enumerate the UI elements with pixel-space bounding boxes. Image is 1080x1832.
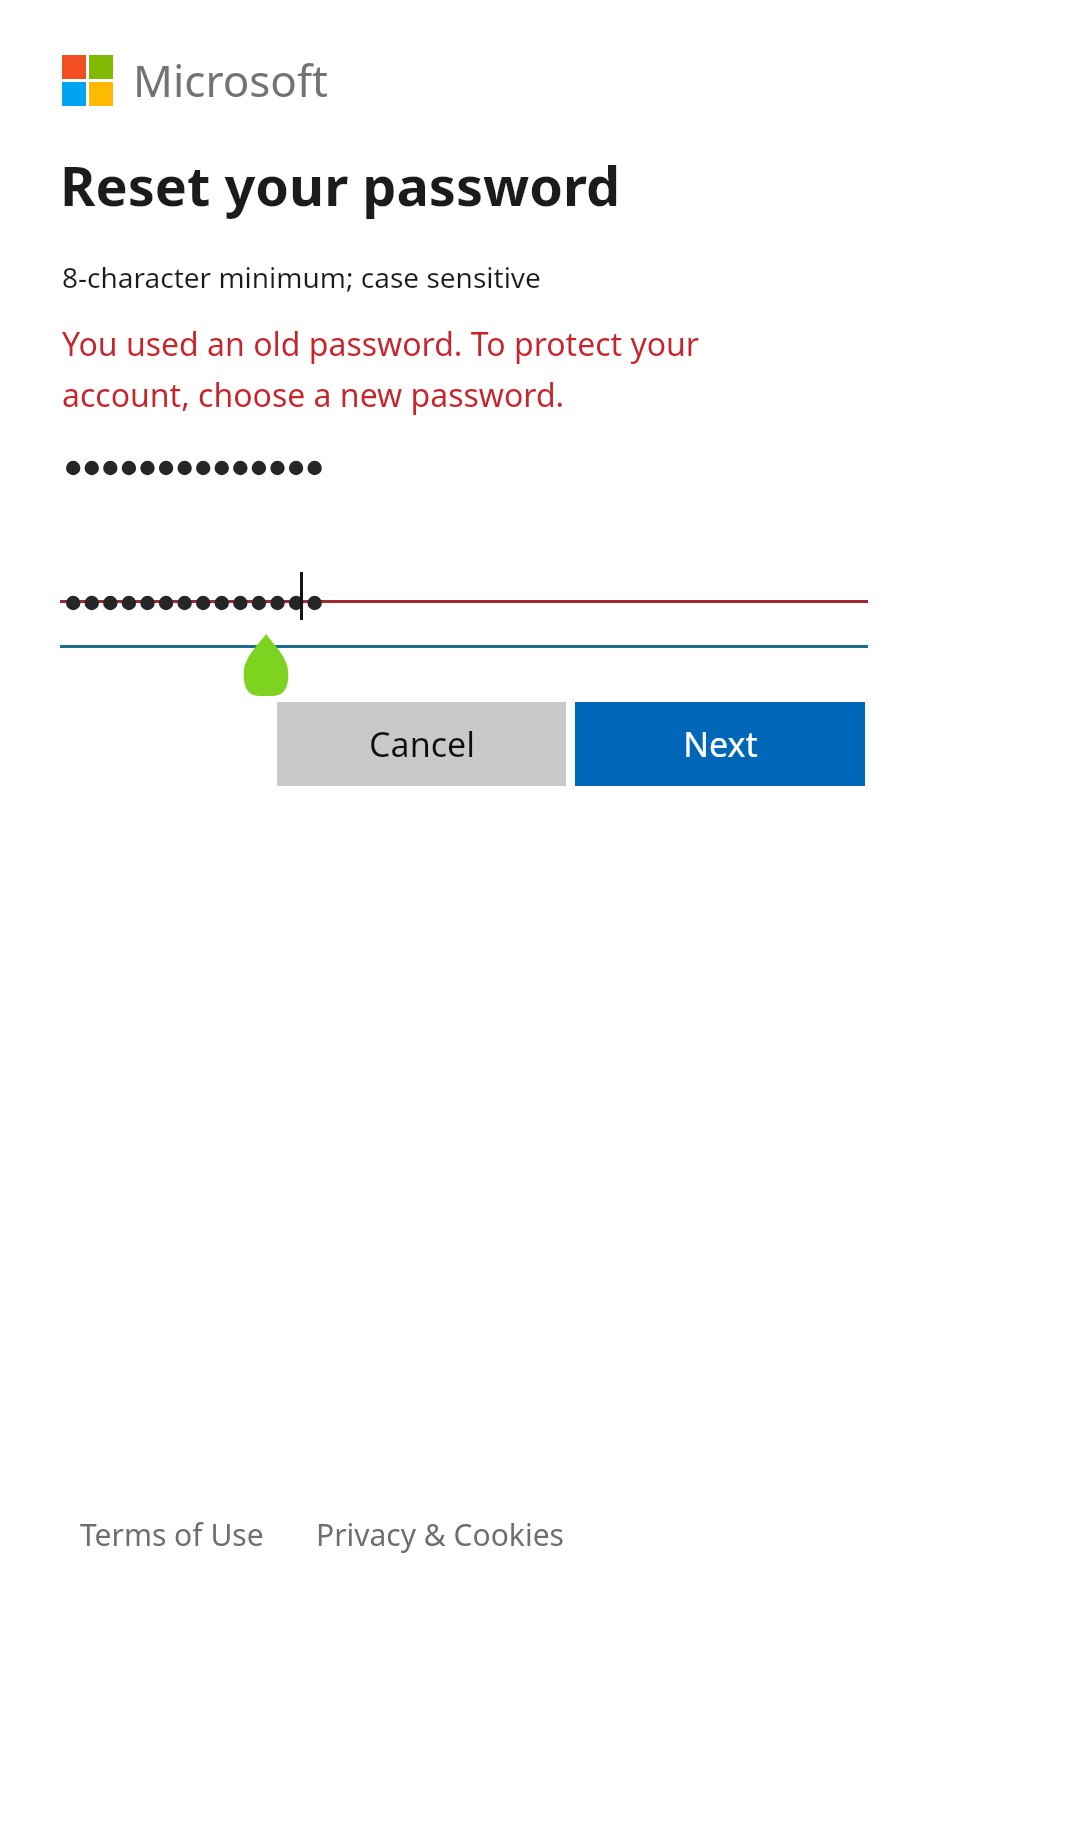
button[interactable]: Cancel bbox=[277, 702, 566, 786]
staticText: Cancel bbox=[369, 721, 475, 767]
staticText: Reset your password bbox=[60, 148, 621, 222]
staticText: 8-character minimum; case sensitive bbox=[62, 258, 541, 296]
button[interactable]: Next bbox=[575, 702, 865, 786]
button[interactable] bbox=[60, 430, 868, 518]
staticText: Privacy & Cookies bbox=[316, 1514, 564, 1555]
staticText: Microsoft bbox=[133, 50, 329, 110]
button[interactable]: Privacy & Cookies bbox=[316, 1508, 564, 1561]
other: Text cursor handle bbox=[231, 634, 293, 696]
staticText: Terms of Use bbox=[80, 1514, 264, 1555]
button[interactable] bbox=[60, 565, 868, 653]
staticText: Next bbox=[683, 721, 758, 767]
button[interactable]: Terms of Use bbox=[80, 1508, 264, 1561]
staticText: You used an old password. To protect you… bbox=[62, 322, 802, 416]
